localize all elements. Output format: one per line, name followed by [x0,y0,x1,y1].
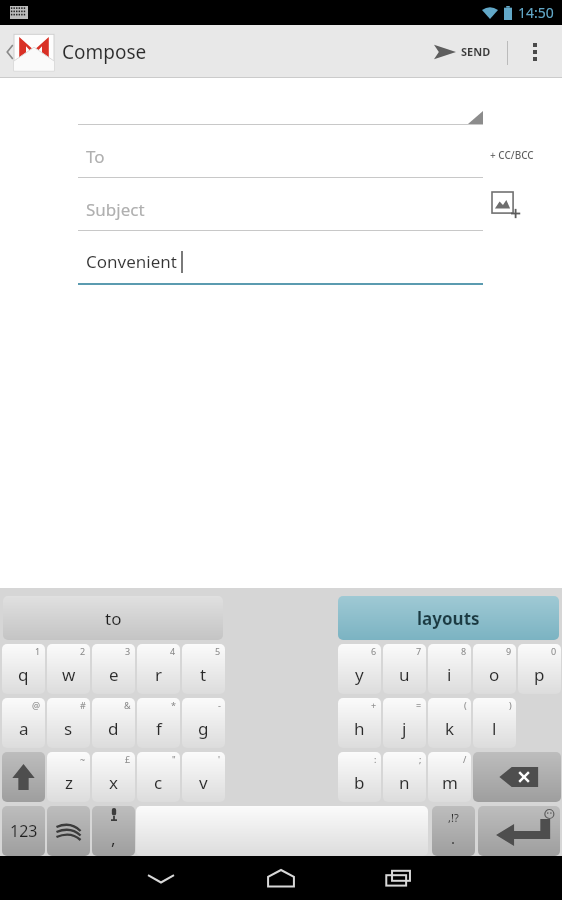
staticText: t [200,663,207,686]
button[interactable]: Punctuation [432,806,475,856]
button[interactable]: Home [251,856,311,900]
button[interactable]: " [137,752,180,802]
staticText: " [172,753,176,765]
staticText: l [492,717,497,740]
staticText: & [124,699,131,711]
button[interactable]: 8 [428,644,471,694]
button[interactable]: Shift [2,752,45,802]
button[interactable]: ) [473,698,516,748]
button[interactable]: 6 [338,644,381,694]
staticText: 0 [551,645,557,657]
button[interactable]: Back [2,39,18,65]
button[interactable]: Hide keyboard [131,856,191,900]
button[interactable]: to [3,596,223,640]
staticText: e [109,663,119,686]
staticText: £ [125,753,131,765]
button[interactable]: To [78,135,483,177]
staticText: v [199,771,208,794]
staticText: 9 [506,645,512,657]
staticText: x [109,771,118,794]
button[interactable]: 4 [137,644,180,694]
staticText: 1 [35,645,41,657]
staticText: 2 [80,645,86,657]
button[interactable]: # [47,698,90,748]
button[interactable]: ( [428,698,471,748]
button[interactable]: 7 [383,644,426,694]
button[interactable]: ~ [47,752,90,802]
button[interactable]: Convenient [78,240,483,282]
staticText: r [155,663,163,686]
button[interactable]: SEND [434,25,502,78]
button[interactable]: 0 [518,644,561,694]
staticText: , [111,827,116,850]
button[interactable]: layouts [338,596,559,640]
button[interactable] [14,30,54,73]
button[interactable]: Swipe input [47,806,90,856]
staticText: ) [509,699,512,711]
staticText: y [355,663,364,686]
button[interactable]: Attach image [492,192,526,224]
button[interactable]: 1 [2,644,45,694]
staticText: 5 [215,645,221,657]
staticText: - [218,699,221,711]
button[interactable]: More options [515,25,555,78]
staticText: j [402,717,407,740]
staticText: o [489,663,500,686]
staticText: To [86,145,105,168]
staticText: = [416,699,422,711]
button[interactable]: Backspace [473,752,561,802]
button[interactable]: / [428,752,471,802]
button[interactable]: + [338,698,381,748]
button[interactable]: Subject [78,188,483,230]
button[interactable]: Numbers [2,806,45,856]
staticText: i [447,663,452,686]
button[interactable]: - [182,698,225,748]
button[interactable]: ; [383,752,426,802]
staticText: 3 [125,645,131,657]
staticText: + [371,699,377,711]
button[interactable]: + CC/BCC [490,142,556,168]
button[interactable]: 3 [92,644,135,694]
staticText: Subject [86,198,145,221]
staticText: : [374,753,377,765]
staticText: h [354,717,365,740]
staticText: u [399,663,410,686]
staticText: ( [464,699,467,711]
staticText: SEND [461,44,491,59]
staticText: / [463,753,467,765]
button[interactable]: Enter [478,806,560,856]
button[interactable]: Comma and voice input [92,806,135,856]
staticText: s [64,717,73,740]
staticText: z [65,771,73,794]
staticText: 14:50 [518,3,554,22]
button[interactable]: 5 [182,644,225,694]
button[interactable]: Recent apps [371,856,431,900]
staticText: w [62,663,76,686]
button[interactable]: @ [2,698,45,748]
staticText: b [354,771,365,794]
staticText: a [19,717,29,740]
button[interactable]: = [383,698,426,748]
button[interactable]: £ [92,752,135,802]
staticText: d [108,717,119,740]
staticText: k [445,717,455,740]
staticText: q [18,663,29,686]
button[interactable]: Space [136,806,428,856]
button[interactable]: 2 [47,644,90,694]
button[interactable]: : [338,752,381,802]
staticText: 6 [371,645,377,657]
staticText: m [442,771,458,794]
button[interactable]: ' [182,752,225,802]
button[interactable]: & [92,698,135,748]
staticText: + CC/BCC [490,148,534,162]
staticText: f [156,717,162,740]
button[interactable]: * [137,698,180,748]
staticText: layouts [417,607,480,630]
staticText: Convenient [86,250,177,273]
staticText: ,!? [448,810,459,825]
button[interactable]: 9 [473,644,516,694]
staticText: 8 [461,645,467,657]
staticText: # [80,699,86,711]
staticText: Compose [62,39,147,65]
staticText: @ [32,699,41,711]
